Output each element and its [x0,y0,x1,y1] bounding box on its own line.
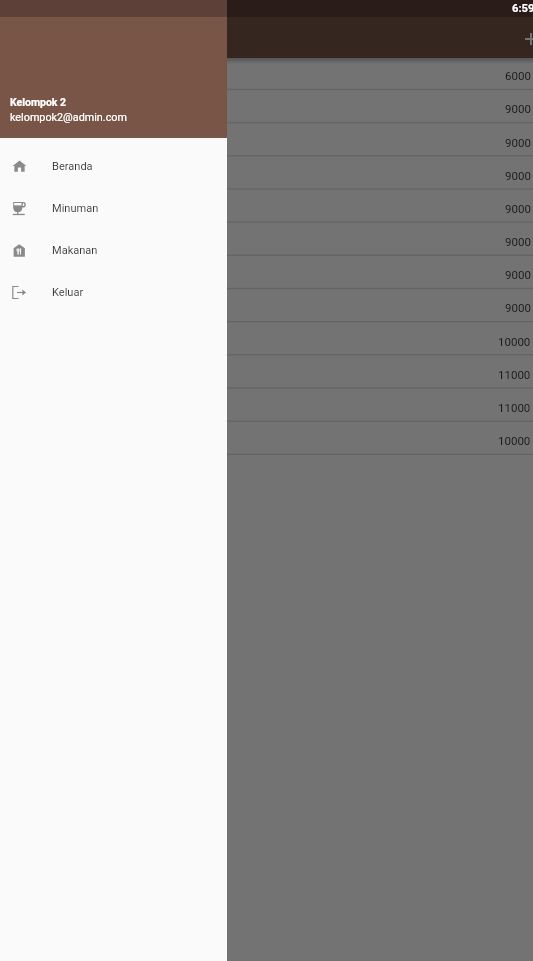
button[interactable]: Lemon Tea [0,156,533,189]
staticText: Kelompok 2 [10,96,67,108]
button[interactable]: Milk Shake [0,255,533,288]
button[interactable]: Matcha Latte [0,388,533,421]
button[interactable]: Tutup menu [227,0,533,961]
staticText: Makanan [52,244,98,257]
staticText: 9000 [505,202,531,215]
button[interactable]: Cappucino [0,189,533,222]
staticText: Green Tea [8,235,60,248]
staticText: Lemon Tea [8,169,65,182]
staticText: 9000 [505,301,531,314]
button[interactable]: Kopi Susu [0,89,533,122]
button[interactable]: Coklat Panas [0,355,533,388]
staticText: Keluar [52,286,84,299]
staticText: 9000 [505,169,531,182]
staticText: 9000 [505,102,531,115]
button[interactable]: Tambah [513,21,533,57]
button[interactable]: Es Kopi Susu [0,322,533,355]
staticText: 11000 [498,368,531,381]
button[interactable]: Makanan [0,229,227,271]
staticText: kelompok2@admin.com [10,111,127,124]
button[interactable]: Es Teh Manis [0,56,533,89]
staticText: 9000 [505,235,531,248]
button[interactable]: Green Tea [0,222,533,255]
button[interactable]: Minuman [0,187,227,229]
staticText: Beranda [52,160,93,173]
button[interactable]: Keluar [0,271,227,313]
staticText: Cappucino [8,202,63,215]
staticText: 6:59 [512,2,533,15]
staticText: Minuman [52,202,99,215]
button[interactable]: Es Jeruk [0,123,533,156]
button[interactable]: Soda Gembira [0,421,533,454]
staticText: 6000 [505,69,531,82]
staticText: 11000 [498,401,531,414]
staticText: Kopi Susu [8,102,60,115]
button[interactable]: Beranda [0,145,227,187]
staticText: 10000 [498,434,531,447]
staticText: 10000 [498,335,531,348]
staticText: 9000 [505,268,531,281]
staticText: Es Jeruk [8,136,52,149]
button[interactable]: Thai Tea [0,288,533,321]
staticText: 9000 [505,136,531,149]
